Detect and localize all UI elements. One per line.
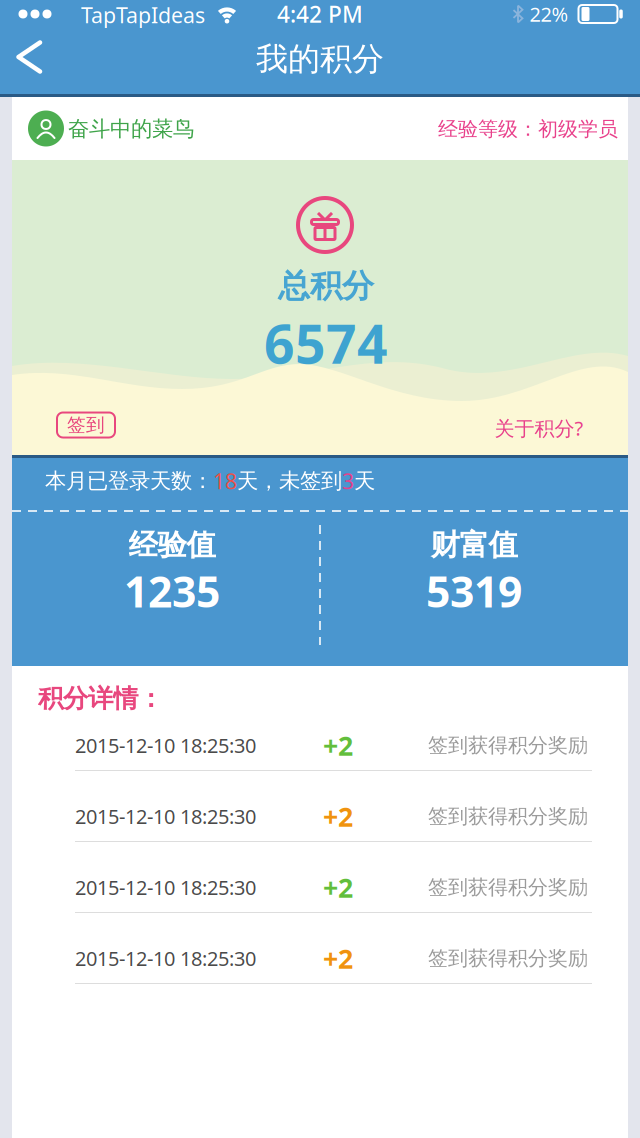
button[interactable]: 签到 <box>56 411 116 438</box>
staticText: 5319 <box>426 563 522 619</box>
staticText: +2 <box>323 870 353 905</box>
staticText: 关于积分? <box>494 415 583 441</box>
staticText: 签到 <box>67 413 105 436</box>
staticText: TapTapIdeas <box>81 1 205 29</box>
staticText: 签到获得积分奖励 <box>428 875 588 900</box>
staticText: +2 <box>323 799 353 834</box>
button[interactable] <box>8 28 52 94</box>
button[interactable]: 奋斗中的菜鸟 <box>12 97 628 160</box>
staticText: 22% <box>529 1 568 27</box>
staticText: 2015-12-10 18:25:30 <box>75 945 256 972</box>
staticText: 签到获得积分奖励 <box>428 733 588 758</box>
staticText: 2015-12-10 18:25:30 <box>75 874 256 901</box>
staticText: 18 <box>213 467 237 495</box>
staticText: 总积分 <box>278 266 374 306</box>
staticText: 我的积分 <box>256 39 384 79</box>
staticText: 3 <box>342 467 354 495</box>
staticText: 奋斗中的菜鸟 <box>68 116 194 142</box>
staticText: 1235 <box>124 563 220 619</box>
staticText: 积分详情： <box>38 683 163 714</box>
staticText: 签到获得积分奖励 <box>428 946 588 971</box>
staticText: 2015-12-10 18:25:30 <box>75 803 256 830</box>
button[interactable]: 关于积分? <box>494 415 583 441</box>
staticText: 本月已登录天数： <box>45 468 213 494</box>
staticText: 4:42 PM <box>277 0 363 29</box>
staticText: 2015-12-10 18:25:30 <box>75 732 256 759</box>
staticText: 6574 <box>264 308 388 378</box>
staticText: 天，未签到 <box>237 468 342 494</box>
staticText: +2 <box>323 941 353 976</box>
staticText: +2 <box>323 728 353 763</box>
staticText: 天 <box>354 468 375 494</box>
staticText: 经验值 <box>128 527 215 563</box>
staticText: 财富值 <box>430 527 517 563</box>
staticText: 经验等级：初级学员 <box>438 117 618 141</box>
staticText: 签到获得积分奖励 <box>428 804 588 829</box>
